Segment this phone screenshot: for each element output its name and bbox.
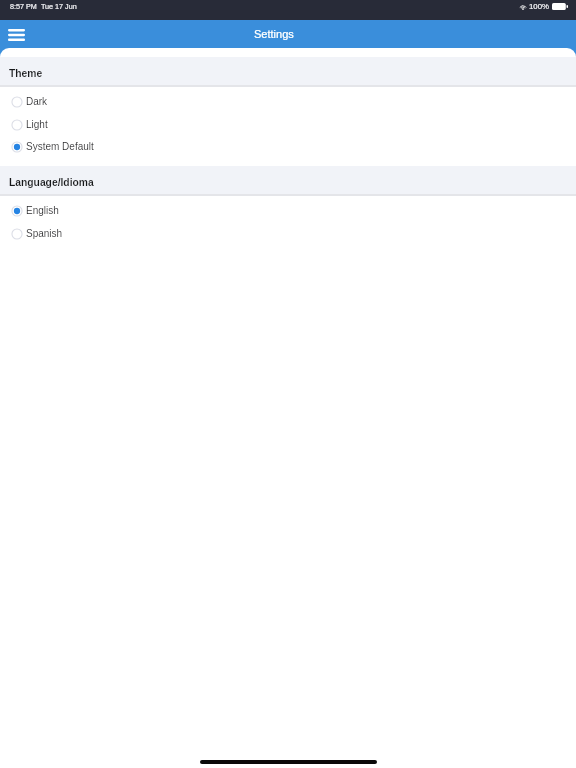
staticText: Light: [26, 119, 48, 130]
staticText: 8:57 PM: [10, 2, 37, 10]
button[interactable]: Light: [0, 113, 576, 136]
staticText: 100%: [529, 2, 549, 11]
staticText: English: [26, 205, 59, 216]
staticText: Theme: [9, 68, 43, 80]
staticText: System Default: [26, 141, 94, 152]
staticText: Spanish: [26, 228, 63, 239]
staticText: Dark: [26, 96, 48, 107]
button[interactable]: System Default: [0, 135, 576, 158]
staticText: Language/Idioma: [9, 177, 94, 189]
staticText: Tue 17 Jun: [41, 2, 77, 10]
button[interactable]: Spanish: [0, 222, 576, 245]
button[interactable]: Dark: [0, 90, 576, 113]
staticText: Settings: [254, 28, 294, 40]
button[interactable]: English: [0, 199, 576, 222]
button[interactable]: Open navigation menu: [3, 21, 30, 48]
